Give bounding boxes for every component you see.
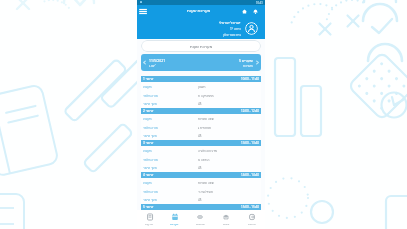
button[interactable]: שיעור 5 <box>143 204 259 210</box>
button[interactable]: ציונים <box>213 210 239 229</box>
staticText: הודעות <box>145 222 154 225</box>
staticText: מורה מלמד <box>143 126 198 130</box>
staticText: 45 <box>198 134 202 138</box>
button[interactable]: משך שיעור <box>141 99 261 108</box>
staticText: 14:00 - 14:40 <box>241 173 259 177</box>
staticText: בית ספר אלון <box>223 33 241 37</box>
staticText: מקצוע <box>143 117 198 120</box>
staticText: מקצוע <box>143 181 198 184</box>
button[interactable]: משך שיעור <box>141 131 261 140</box>
button[interactable]: מקצוע <box>141 146 261 155</box>
button[interactable]: מורה מלמד <box>141 155 261 164</box>
button[interactable]: Notifications <box>253 9 258 14</box>
staticText: יום ג' <box>149 64 156 68</box>
staticText: הנדסה א <box>198 158 210 162</box>
button[interactable]: מבחנים <box>187 210 213 229</box>
staticText: 45 <box>198 166 202 170</box>
staticText: מבחנים <box>196 222 205 225</box>
staticText: משך שיעור <box>143 102 198 106</box>
staticText: שיעור 5 <box>143 205 154 209</box>
staticText: 5 שיעורים <box>239 58 253 63</box>
button[interactable]: Next day <box>254 59 261 66</box>
button[interactable]: משך שיעור <box>141 163 261 172</box>
staticText: שפה וספרות <box>198 117 214 121</box>
staticText: 15:00 - 15:40 <box>241 205 259 209</box>
button[interactable]: נוכחות <box>239 210 265 229</box>
button[interactable]: שיעור 1 <box>143 76 259 82</box>
button[interactable]: Previous day <box>141 59 148 66</box>
staticText: משך שיעור <box>143 134 198 138</box>
staticText: שיעור 1 <box>143 77 154 81</box>
staticText: 45 <box>198 102 202 106</box>
staticText: ציונים <box>223 222 230 225</box>
button[interactable]: מקצוע <box>141 114 261 123</box>
staticText: מערכת שעות <box>187 8 211 14</box>
staticText: מערכת שעות <box>190 44 213 49</box>
button[interactable]: הודעות <box>137 210 162 229</box>
staticText: 10:00 - 11:40 <box>241 77 259 81</box>
staticText: מערכת <box>243 64 253 68</box>
staticText: משך שיעור <box>143 198 198 202</box>
staticText: כיתה י'1 <box>230 27 241 31</box>
staticText: 12:00 - 12:40 <box>241 109 259 113</box>
staticText: מדע וטכנולוגיה <box>198 149 218 153</box>
staticText: מורה מלמד <box>143 158 198 162</box>
staticText: מורה מלמד <box>143 190 198 194</box>
button[interactable]: מערכת <box>162 210 187 229</box>
staticText: משך שיעור <box>143 166 198 170</box>
staticText: שיעור 4 <box>143 173 154 177</box>
button[interactable]: Profile <box>245 22 258 35</box>
staticText: שיעור 2 <box>143 109 154 113</box>
staticText: נוכחות <box>248 222 256 225</box>
button[interactable]: מקצוע <box>141 82 261 91</box>
button[interactable]: משך שיעור <box>141 195 261 204</box>
button[interactable]: שיעור 2 <box>143 108 259 114</box>
staticText: 45 <box>198 198 202 202</box>
staticText: חשבון <box>198 85 206 88</box>
staticText: מורה מלמד <box>143 94 198 98</box>
button[interactable]: מקצוע <box>141 178 261 187</box>
staticText: מקצוע <box>143 149 198 152</box>
staticText: מערכת <box>170 222 179 225</box>
staticText: 10:41 <box>256 1 263 5</box>
button[interactable]: מורה מלמד <box>141 187 261 196</box>
staticText: מקצוע <box>143 85 198 88</box>
button[interactable]: מורה מלמד <box>141 123 261 132</box>
staticText: 11/5/2021 <box>149 58 166 63</box>
staticText: 13:00 - 13:40 <box>241 141 259 145</box>
staticText: סוציולוגיה ד <box>198 190 213 194</box>
staticText: שיעור 3 <box>143 141 154 145</box>
button[interactable]: Menu <box>138 6 148 16</box>
button[interactable]: שיעור 3 <box>143 140 259 146</box>
button[interactable]: Home <box>242 9 247 14</box>
staticText: מתמטיקה ח <box>198 94 214 98</box>
staticText: ספרותית ג <box>198 126 211 130</box>
button[interactable]: מערכת שעות <box>141 40 261 52</box>
staticText: ישראל ישראלי <box>219 20 241 25</box>
button[interactable]: מורה מלמד <box>141 91 261 100</box>
button[interactable]: שיעור 4 <box>143 172 259 178</box>
staticText: שפה וספרות <box>198 181 214 185</box>
